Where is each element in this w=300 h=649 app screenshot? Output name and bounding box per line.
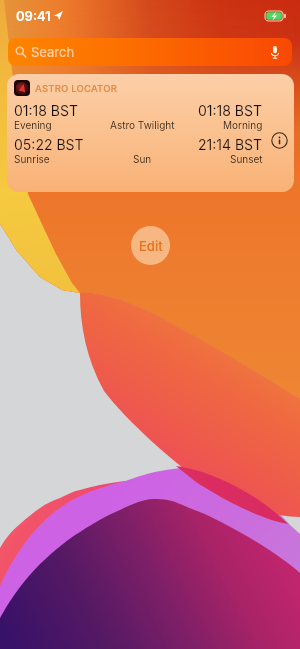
staticText: 09:41 <box>16 8 51 24</box>
staticText: Search <box>31 44 75 60</box>
staticText: Sunset <box>230 153 263 165</box>
staticText: ASTRO LOCATOR <box>35 83 118 94</box>
button[interactable]: Info <box>271 132 288 149</box>
staticText: 01:18 BST <box>198 102 263 119</box>
staticText: 01:18 BST <box>14 102 79 119</box>
button[interactable]: Voice search <box>268 45 282 59</box>
staticText: Morning <box>223 119 263 131</box>
button[interactable]: Edit <box>131 226 170 265</box>
staticText: 05:22 BST <box>14 136 84 153</box>
staticText: Sun <box>133 153 152 165</box>
staticText: Evening <box>14 119 52 131</box>
staticText: Edit <box>139 238 163 254</box>
button[interactable]: ASTRO LOCATOR <box>7 74 294 192</box>
staticText: Astro Twilight <box>110 119 175 131</box>
staticText: Sunrise <box>14 153 50 165</box>
staticText: 21:14 BST <box>198 136 263 153</box>
button[interactable]: Search <box>8 38 292 66</box>
